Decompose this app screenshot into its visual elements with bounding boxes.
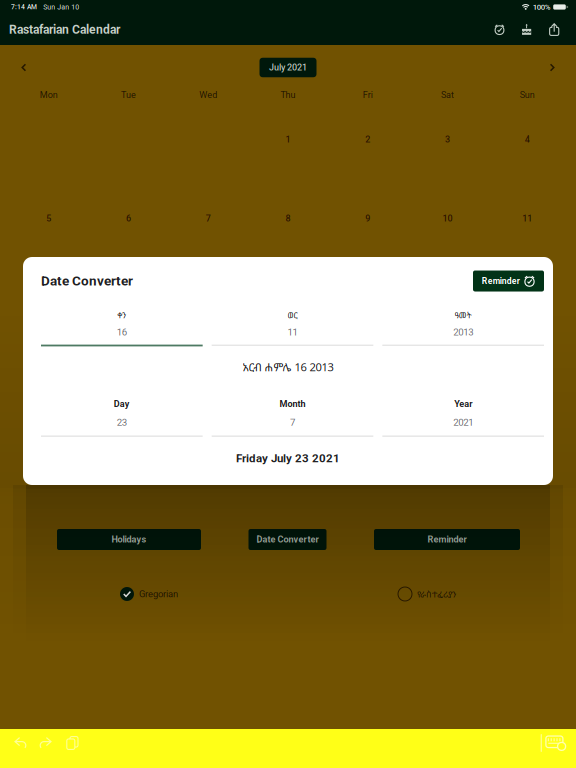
staticText: Reminder [482,276,520,286]
staticText: Thu [280,90,295,100]
staticText: 1 [285,134,290,145]
button[interactable]: Date Converter [248,529,326,550]
staticText: 2021 [453,417,473,428]
button[interactable]: Undo [7,730,33,756]
staticText: 5 [46,213,51,224]
staticText: አርብ ሐምሌ 16 2013 [242,359,333,375]
button[interactable]: Next month [539,54,565,80]
staticText: Sun [520,90,535,100]
staticText: 7 [290,417,295,428]
staticText: Sun Jan 10 [43,3,79,11]
staticText: 6 [126,213,131,224]
staticText: 7 [206,213,211,224]
staticText: Friday July 23 2021 [236,451,340,465]
staticText: Fri [363,90,373,100]
staticText: 4 [525,134,530,145]
button[interactable]: Previous month [11,54,37,80]
button[interactable]: July 2021 [259,58,316,77]
button[interactable]: Reminder [473,270,544,291]
button[interactable]: Share [539,17,565,42]
staticText: Day [114,399,130,409]
button[interactable]: Birthdays [512,17,539,42]
staticText: 16 [117,326,127,338]
button[interactable]: Gregorian [120,587,178,601]
staticText: 11 [287,326,297,338]
button[interactable]: Reminders [486,17,512,42]
staticText: 23 [117,417,127,428]
staticText: Tue [121,90,136,100]
staticText: Year [454,399,472,409]
staticText: 11 [522,213,532,224]
staticText: 10 [442,213,452,224]
staticText: 8 [285,213,290,224]
button[interactable]: Paste [59,730,85,756]
staticText: Gregorian [139,588,178,599]
staticText: 9 [365,213,370,224]
staticText: 2 [365,134,370,145]
staticText: Wed [199,90,217,100]
staticText: Rastafarian Calendar [9,22,120,37]
staticText: 2013 [453,326,473,338]
staticText: 7:14 AM [11,3,37,11]
staticText: የራስተፈሪያን [417,588,456,600]
staticText: Sat [441,90,454,100]
staticText: Holidays [111,534,146,545]
staticText: Date Converter [256,534,318,545]
staticText: July 2021 [269,62,307,73]
button[interactable]: የራስተፈሪያን [398,587,456,601]
button[interactable]: Holidays [57,529,201,550]
button[interactable]: Redo [33,730,59,756]
staticText: 100% [533,2,551,11]
staticText: Mon [40,90,58,100]
button[interactable]: Hide keyboard [542,730,570,756]
staticText: 3 [445,134,450,145]
staticText: ዓመት [455,310,472,321]
staticText: ቀን [117,310,126,321]
staticText: ወር [287,310,297,321]
button[interactable]: Reminder [374,529,520,550]
staticText: Date Converter [41,273,133,289]
staticText: Reminder [427,534,466,545]
staticText: Month [279,399,305,409]
